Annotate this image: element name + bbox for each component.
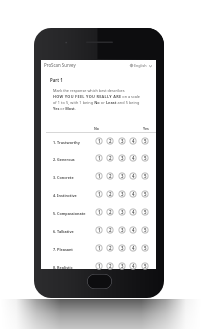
button[interactable]: Rate 1 — [95, 226, 103, 234]
staticText: 2 — [109, 209, 112, 215]
staticText: 4 — [132, 155, 135, 161]
staticText: 3 — [121, 191, 124, 197]
staticText: 4 — [132, 209, 135, 215]
staticText: 2 — [109, 227, 112, 233]
button[interactable]: Rate 3 — [118, 172, 126, 180]
staticText: 2 — [109, 191, 112, 197]
staticText: 3 — [121, 227, 124, 233]
button[interactable]: Rate 5 — [141, 172, 149, 180]
button[interactable]: Rate 2 — [106, 208, 114, 216]
staticText: 1 — [98, 191, 101, 197]
staticText: Part 1 — [50, 77, 63, 83]
button[interactable]: Rate 1 — [95, 190, 103, 198]
button[interactable]: 6. Talkative — [41, 225, 156, 243]
staticText: 2 — [109, 155, 112, 161]
staticText: 2 — [109, 245, 112, 251]
staticText: 5. Compassionate — [53, 211, 86, 216]
button[interactable]: 8. Realistic — [41, 261, 156, 279]
button[interactable]: Rate 5 — [141, 190, 149, 198]
staticText: 2. Generous — [53, 157, 75, 162]
button[interactable]: Rate 4 — [129, 208, 137, 216]
button[interactable]: Rate 5 — [141, 154, 149, 162]
button[interactable]: Rate 4 — [129, 262, 137, 270]
button[interactable]: Rate 5 — [141, 208, 149, 216]
staticText: 5 — [144, 191, 147, 197]
staticText: 7. Pleasant — [53, 247, 73, 252]
button[interactable]: Rate 2 — [106, 244, 114, 252]
staticText: 3 — [121, 263, 124, 269]
button[interactable]: Rate 5 — [141, 244, 149, 252]
staticText: 5 — [144, 155, 147, 161]
staticText: 2 — [109, 263, 112, 269]
button[interactable]: Rate 3 — [118, 137, 126, 145]
button[interactable]: Rate 5 — [141, 226, 149, 234]
button[interactable]: 7. Pleasant — [41, 243, 156, 261]
button[interactable]: Rate 2 — [106, 172, 114, 180]
staticText: 8. Realistic — [53, 265, 73, 270]
button[interactable]: Rate 2 — [106, 226, 114, 234]
button[interactable]: Rate 3 — [118, 262, 126, 270]
button[interactable]: Rate 1 — [95, 208, 103, 216]
staticText: 5 — [144, 209, 147, 215]
staticText: 1 — [98, 209, 101, 215]
staticText: 1 — [98, 227, 101, 233]
staticText: 3 — [121, 173, 124, 179]
button[interactable]: Rate 4 — [129, 226, 137, 234]
staticText: 5 — [144, 227, 147, 233]
button[interactable]: Rate 3 — [118, 244, 126, 252]
staticText: 1 — [98, 155, 101, 161]
staticText: 3 — [121, 209, 124, 215]
staticText: 3 — [121, 245, 124, 251]
button[interactable]: Rate 1 — [95, 137, 103, 145]
staticText: English — [134, 63, 147, 68]
button[interactable]: Rate 4 — [129, 244, 137, 252]
button[interactable]: 1. Trustworthy — [41, 136, 156, 154]
staticText: 1 — [98, 138, 101, 144]
staticText: 4 — [132, 138, 135, 144]
button[interactable]: 2. Generous — [41, 153, 156, 171]
button[interactable]: Rate 1 — [95, 244, 103, 252]
button[interactable]: Rate 4 — [129, 190, 137, 198]
button[interactable]: Rate 1 — [95, 172, 103, 180]
button[interactable]: English — [130, 63, 152, 68]
button[interactable]: Rate 3 — [118, 190, 126, 198]
staticText: 1. Trustworthy — [53, 140, 80, 145]
staticText: No — [94, 126, 100, 131]
staticText: 2 — [109, 138, 112, 144]
staticText: 5 — [144, 263, 147, 269]
staticText: 4 — [132, 263, 135, 269]
button[interactable]: Rate 2 — [106, 262, 114, 270]
button[interactable]: 4. Instinctive — [41, 189, 156, 207]
staticText: 5 — [144, 138, 147, 144]
staticText: 3 — [121, 155, 124, 161]
staticText: Yes — [143, 126, 149, 131]
button[interactable]: Rate 4 — [129, 154, 137, 162]
staticText: 1 — [98, 173, 101, 179]
button[interactable]: Rate 3 — [118, 208, 126, 216]
button[interactable]: Home — [87, 274, 112, 289]
button[interactable]: Rate 2 — [106, 190, 114, 198]
staticText: 4 — [132, 245, 135, 251]
staticText: 3 — [121, 138, 124, 144]
button[interactable]: Rate 2 — [106, 154, 114, 162]
button[interactable]: Rate 3 — [118, 226, 126, 234]
button[interactable]: Rate 1 — [95, 154, 103, 162]
staticText: 5 — [144, 173, 147, 179]
button[interactable]: Rate 2 — [106, 137, 114, 145]
staticText: 1 — [98, 263, 101, 269]
button[interactable]: Rate 3 — [118, 154, 126, 162]
button[interactable]: Rate 5 — [141, 262, 149, 270]
staticText: ProScan Survey — [44, 62, 76, 68]
staticText: Mark the response which best describes H… — [53, 88, 141, 111]
button[interactable]: Rate 1 — [95, 262, 103, 270]
button[interactable]: 3. Concrete — [41, 171, 156, 189]
staticText: 4 — [132, 227, 135, 233]
staticText: 2 — [109, 173, 112, 179]
button[interactable]: 5. Compassionate — [41, 207, 156, 225]
staticText: 4 — [132, 173, 135, 179]
button[interactable]: Rate 4 — [129, 137, 137, 145]
button[interactable]: Rate 5 — [141, 137, 149, 145]
staticText: 4 — [132, 191, 135, 197]
button[interactable]: Rate 4 — [129, 172, 137, 180]
staticText: 3. Concrete — [53, 175, 74, 180]
